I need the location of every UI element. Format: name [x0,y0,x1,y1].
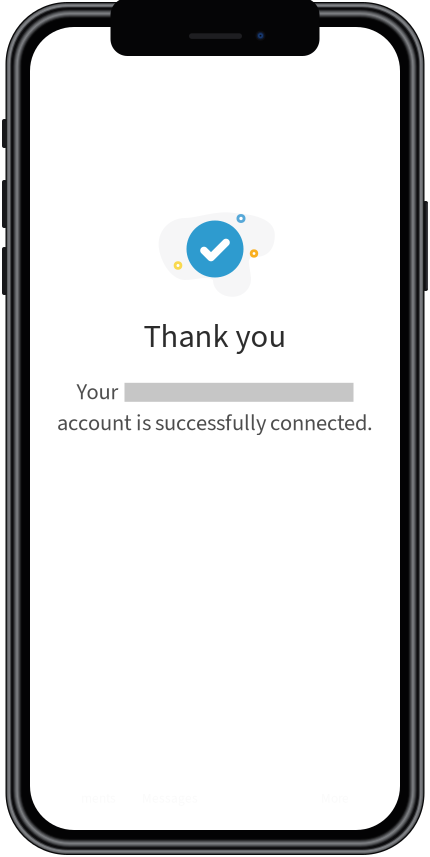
staticText: Thank you [143,314,286,360]
staticText: Your [76,376,118,408]
staticText: account is successfully connected. [57,407,373,439]
